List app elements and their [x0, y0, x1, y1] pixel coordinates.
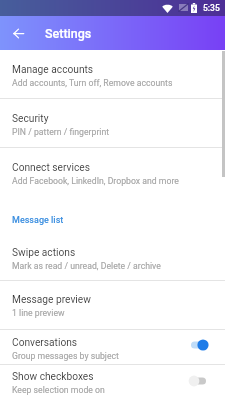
- button[interactable]: Security: [0, 99, 225, 147]
- staticText: Connect services: [12, 162, 90, 174]
- button[interactable]: Switch off: [183, 369, 215, 393]
- button[interactable]: Switch on: [183, 333, 215, 357]
- button[interactable]: Conversations: [0, 330, 225, 364]
- staticText: Security: [12, 113, 49, 125]
- staticText: Message preview: [12, 294, 91, 306]
- button[interactable]: Connect services: [0, 148, 225, 196]
- staticText: Conversations: [12, 337, 78, 349]
- button[interactable]: Show checkboxes: [0, 365, 225, 400]
- staticText: Add accounts, Turn off, Remove accounts: [12, 78, 173, 88]
- staticText: Group messages by subject: [12, 351, 119, 361]
- staticText: Keep selection mode on: [12, 385, 105, 395]
- staticText: Mark as read / unread, Delete / archive: [12, 261, 161, 271]
- staticText: Settings: [45, 26, 92, 41]
- staticText: Swipe actions: [12, 247, 76, 259]
- staticText: Message list: [12, 215, 64, 226]
- staticText: 5:35: [203, 3, 220, 13]
- staticText: Manage accounts: [12, 64, 94, 76]
- button[interactable]: Back: [0, 16, 34, 50]
- staticText: 1 line preview: [12, 308, 65, 318]
- button[interactable]: Swipe actions: [0, 232, 225, 280]
- staticText: Add Facebook, LinkedIn, Dropbox and more: [12, 176, 179, 186]
- button[interactable]: Manage accounts: [0, 50, 225, 98]
- other: Wi-Fi: [162, 4, 173, 13]
- button[interactable]: Message preview: [0, 281, 225, 329]
- staticText: Show checkboxes: [12, 371, 94, 383]
- staticText: PIN / pattern / fingerprint: [12, 127, 110, 137]
- other: No SIM: [179, 4, 188, 11]
- other: Battery: [191, 3, 197, 13]
